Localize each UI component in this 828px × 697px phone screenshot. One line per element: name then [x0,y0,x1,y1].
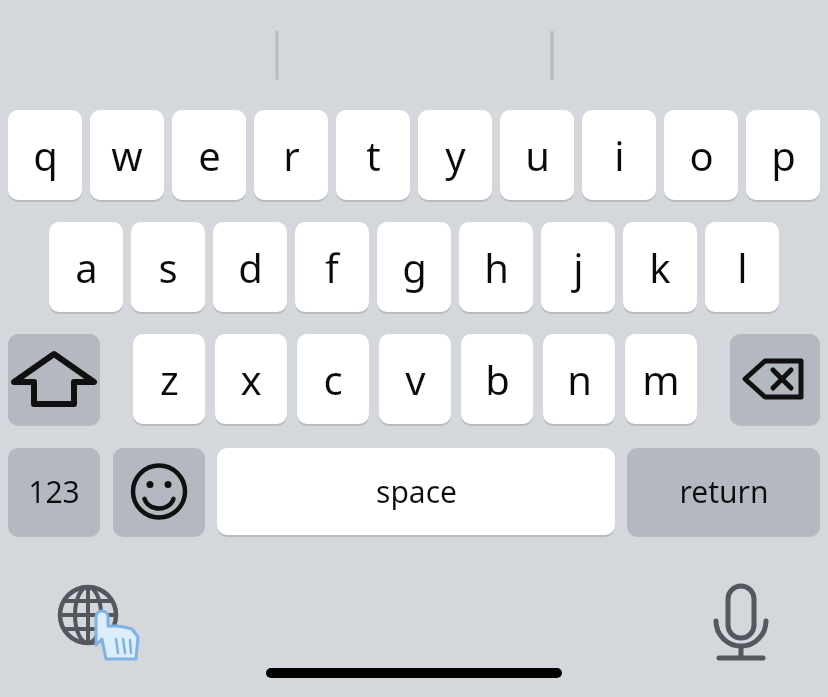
button[interactable]: Dictation [706,578,776,652]
button[interactable]: Change keyboard language [48,575,138,655]
staticText: b [485,352,510,406]
button[interactable]: d [213,222,287,312]
staticText: z [160,352,179,406]
staticText: 123 [28,471,80,512]
button[interactable]: v [379,334,451,424]
staticText: j [573,240,584,294]
staticText: u [525,128,550,182]
button[interactable]: Emoji [113,448,205,535]
button[interactable]: g [377,222,451,312]
button[interactable]: 123 [8,448,100,535]
button[interactable]: s [131,222,205,312]
button[interactable]: y [418,110,492,200]
staticText: t [366,128,381,182]
button[interactable]: r [254,110,328,200]
staticText: f [325,240,339,294]
button[interactable]: t [336,110,410,200]
button[interactable]: m [625,334,697,424]
staticText: w [111,128,143,182]
staticText: space [376,471,457,512]
button[interactable]: i [582,110,656,200]
button[interactable]: e [172,110,246,200]
staticText: a [75,240,98,294]
staticText: q [33,128,58,182]
staticText: o [689,128,714,182]
button[interactable]: n [543,334,615,424]
button[interactable]: space [217,448,615,535]
staticText: i [614,128,625,182]
button[interactable]: x [215,334,287,424]
staticText: p [771,128,796,182]
staticText: s [158,240,178,294]
button[interactable]: u [500,110,574,200]
button[interactable]: c [297,334,369,424]
staticText: l [737,240,748,294]
staticText: k [649,240,671,294]
button[interactable]: o [664,110,738,200]
staticText: e [198,128,221,182]
staticText: d [238,240,263,294]
button[interactable]: w [90,110,164,200]
staticText: m [642,352,680,406]
button[interactable]: return [627,448,820,535]
staticText: c [323,352,343,406]
staticText: return [679,471,769,512]
button[interactable]: b [461,334,533,424]
button[interactable]: Backspace [730,334,820,424]
button[interactable]: f [295,222,369,312]
staticText: n [567,352,592,406]
button[interactable]: j [541,222,615,312]
button[interactable]: h [459,222,533,312]
staticText: y [445,128,466,182]
button[interactable]: q [8,110,82,200]
button[interactable]: a [49,222,123,312]
button[interactable]: Shift [8,334,100,424]
staticText: v [405,352,426,406]
button[interactable]: k [623,222,697,312]
button[interactable]: z [133,334,205,424]
staticText: g [402,240,427,294]
staticText: h [484,240,509,294]
staticText: x [240,352,262,406]
button[interactable]: l [705,222,779,312]
button[interactable]: p [746,110,820,200]
staticText: r [283,128,300,182]
